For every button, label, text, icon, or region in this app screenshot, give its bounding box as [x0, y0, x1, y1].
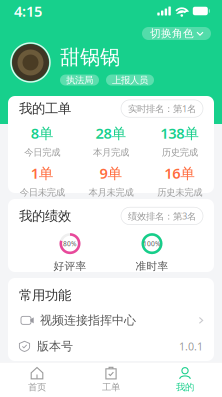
staticText: 视频连接指挥中心	[40, 313, 136, 328]
staticText: 本月完成	[93, 147, 129, 158]
staticText: 历史完成	[162, 147, 198, 158]
staticText: 9单	[99, 163, 122, 183]
staticText: 4:15	[14, 1, 42, 21]
staticText: 执法局	[66, 74, 93, 86]
button[interactable]: 切换角色	[142, 27, 211, 40]
staticText: 上报人员	[112, 74, 148, 86]
button[interactable]: 版本号	[8, 333, 214, 359]
staticText: 我的	[176, 381, 194, 393]
staticText: 历史未完成	[157, 187, 202, 198]
staticText: 1.0.1	[179, 339, 203, 353]
button[interactable]: 视频连接指挥中心	[8, 307, 214, 333]
staticText: 常用功能	[19, 287, 71, 303]
staticText: 今日未完成	[20, 187, 65, 198]
staticText: 绩效排名：第3名	[128, 210, 196, 222]
staticText: 1单	[31, 163, 54, 183]
staticText: 16单	[164, 163, 195, 183]
staticText: 好评率	[53, 260, 86, 273]
staticText: 100%	[143, 239, 161, 248]
staticText: 本月未完成	[88, 187, 133, 198]
staticText: 我的工单	[19, 100, 71, 117]
staticText: 首页	[28, 381, 46, 393]
staticText: 准时率	[135, 260, 168, 273]
staticText: 80%	[63, 239, 77, 248]
staticText: 甜锅锅	[60, 45, 120, 70]
button[interactable]: 我的	[148, 362, 222, 397]
staticText: 切换角色	[150, 27, 194, 40]
staticText: 今日完成	[24, 147, 60, 158]
button[interactable]: 首页	[0, 362, 74, 397]
staticText: 我的绩效	[19, 208, 71, 224]
staticText: 版本号	[37, 339, 73, 354]
staticText: 实时排名：第1名	[128, 102, 196, 115]
staticText: 8单	[31, 123, 54, 143]
button[interactable]: 工单	[74, 362, 148, 397]
staticText: 28单	[95, 123, 126, 143]
staticText: 工单	[102, 381, 120, 393]
staticText: 138单	[160, 123, 199, 143]
